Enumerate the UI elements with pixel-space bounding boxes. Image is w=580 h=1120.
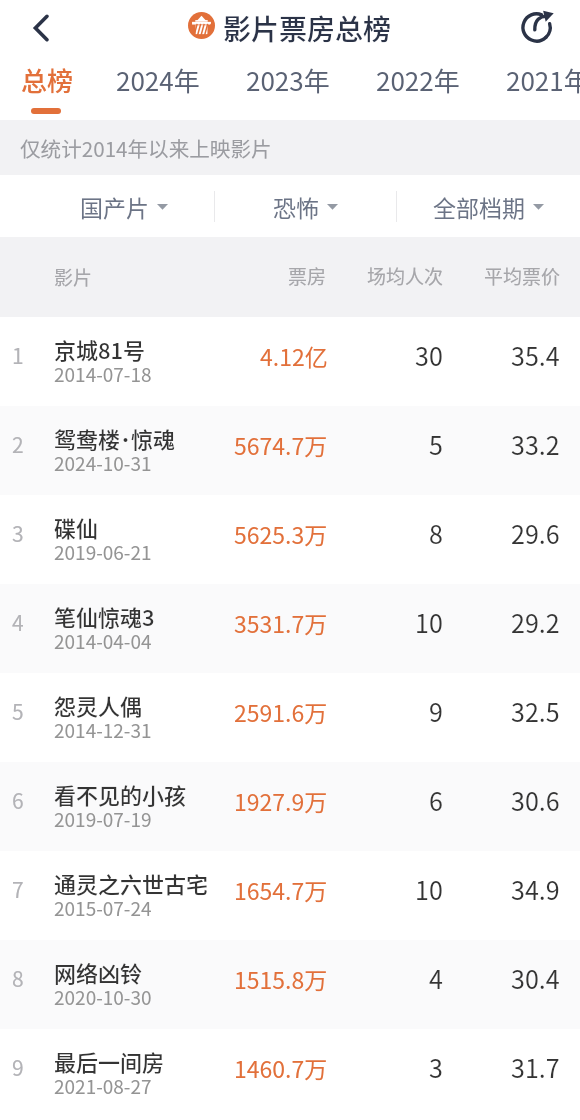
staticText: 通灵之六世古宅 bbox=[54, 867, 209, 899]
button[interactable]: 9 bbox=[0, 1029, 580, 1118]
button[interactable]: 2 bbox=[0, 406, 580, 495]
staticText: 最后一间房 bbox=[54, 1045, 165, 1077]
button[interactable]: 4 bbox=[0, 584, 580, 673]
staticText: 30 bbox=[415, 337, 443, 373]
staticText: 31.7 bbox=[511, 1049, 560, 1085]
staticText: 3 bbox=[12, 518, 24, 548]
button[interactable]: 2021年 bbox=[493, 56, 580, 120]
staticText: 看不见的小孩 bbox=[54, 778, 187, 810]
staticText: 32.5 bbox=[511, 693, 560, 729]
staticText: 碟仙 bbox=[54, 511, 99, 543]
button[interactable]: 7 bbox=[0, 851, 580, 940]
staticText: 鸳鸯楼･惊魂 bbox=[54, 422, 176, 454]
staticText: 4 bbox=[12, 607, 24, 637]
staticText: 1927.9万 bbox=[234, 784, 328, 817]
staticText: 33.2 bbox=[511, 426, 560, 462]
staticText: 3 bbox=[429, 1049, 443, 1085]
button[interactable]: 3 bbox=[0, 495, 580, 584]
staticText: 2 bbox=[12, 429, 24, 459]
staticText: 2014-12-31 bbox=[54, 716, 152, 744]
staticText: 2019-06-21 bbox=[54, 538, 152, 566]
staticText: 2024年 bbox=[116, 61, 200, 99]
staticText: 怨灵人偶 bbox=[54, 689, 143, 721]
staticText: 3531.7万 bbox=[234, 606, 328, 639]
button[interactable]: 2023年 bbox=[233, 56, 343, 120]
staticText: 6 bbox=[12, 785, 24, 815]
staticText: 平均票价 bbox=[484, 262, 561, 290]
staticText: 场均人次 bbox=[367, 262, 444, 290]
staticText: 10 bbox=[415, 871, 443, 907]
staticText: 票房 bbox=[288, 262, 327, 290]
staticText: 10 bbox=[415, 604, 443, 640]
staticText: 9 bbox=[429, 693, 443, 729]
staticText: 7 bbox=[12, 874, 24, 904]
staticText: 30.6 bbox=[511, 782, 560, 818]
staticText: 29.6 bbox=[511, 515, 560, 551]
button[interactable]: 2024年 bbox=[103, 56, 213, 120]
staticText: 1515.8万 bbox=[234, 962, 328, 995]
staticText: 2021年 bbox=[506, 61, 580, 99]
staticText: 35.4 bbox=[511, 337, 560, 373]
button[interactable]: 6 bbox=[0, 762, 580, 851]
staticText: 2014-04-04 bbox=[54, 627, 152, 655]
staticText: 网络凶铃 bbox=[54, 956, 143, 988]
staticText: 29.2 bbox=[511, 604, 560, 640]
button[interactable]: 国产片 bbox=[39, 175, 209, 237]
staticText: 恐怖 bbox=[273, 190, 319, 223]
button[interactable]: Share bbox=[496, 0, 580, 56]
staticText: 1460.7万 bbox=[234, 1051, 328, 1084]
staticText: 34.9 bbox=[511, 871, 560, 907]
staticText: 总榜 bbox=[21, 61, 74, 99]
staticText: 2015-07-24 bbox=[54, 894, 152, 922]
staticText: 笔仙惊魂3 bbox=[54, 600, 155, 632]
staticText: 1 bbox=[12, 340, 24, 370]
button[interactable]: Back bbox=[0, 0, 82, 56]
staticText: 5674.7万 bbox=[234, 428, 328, 461]
staticText: 8 bbox=[12, 963, 24, 993]
staticText: 京城81号 bbox=[54, 333, 146, 365]
staticText: 影片票房总榜 bbox=[223, 8, 392, 49]
staticText: 2024-10-31 bbox=[54, 449, 152, 477]
staticText: 2021-08-27 bbox=[54, 1072, 152, 1100]
staticText: 2591.6万 bbox=[234, 695, 328, 728]
staticText: 2023年 bbox=[246, 61, 330, 99]
staticText: 6 bbox=[429, 782, 443, 818]
staticText: 8 bbox=[429, 515, 443, 551]
button[interactable]: 5 bbox=[0, 673, 580, 762]
staticText: 国产片 bbox=[80, 190, 149, 223]
staticText: 全部档期 bbox=[433, 190, 525, 223]
staticText: 2022年 bbox=[376, 61, 460, 99]
staticText: 仅统计2014年以来上映影片 bbox=[20, 133, 272, 163]
staticText: 影片 bbox=[54, 263, 93, 291]
button[interactable]: 恐怖 bbox=[220, 175, 390, 237]
staticText: 5 bbox=[429, 426, 443, 462]
staticText: 1654.7万 bbox=[234, 873, 328, 906]
staticText: 9 bbox=[12, 1052, 24, 1082]
button[interactable]: 总榜 bbox=[0, 56, 102, 120]
button[interactable]: 8 bbox=[0, 940, 580, 1029]
button[interactable]: 1 bbox=[0, 317, 580, 406]
button[interactable]: 2022年 bbox=[363, 56, 473, 120]
staticText: 5625.3万 bbox=[234, 517, 328, 550]
button[interactable]: 全部档期 bbox=[403, 175, 573, 237]
staticText: 30.4 bbox=[511, 960, 560, 996]
staticText: 4 bbox=[429, 960, 443, 996]
staticText: 4.12亿 bbox=[260, 339, 328, 372]
staticText: 2014-07-18 bbox=[54, 360, 152, 388]
staticText: 5 bbox=[12, 696, 24, 726]
staticText: 2020-10-30 bbox=[54, 983, 152, 1011]
staticText: 2019-07-19 bbox=[54, 805, 152, 833]
